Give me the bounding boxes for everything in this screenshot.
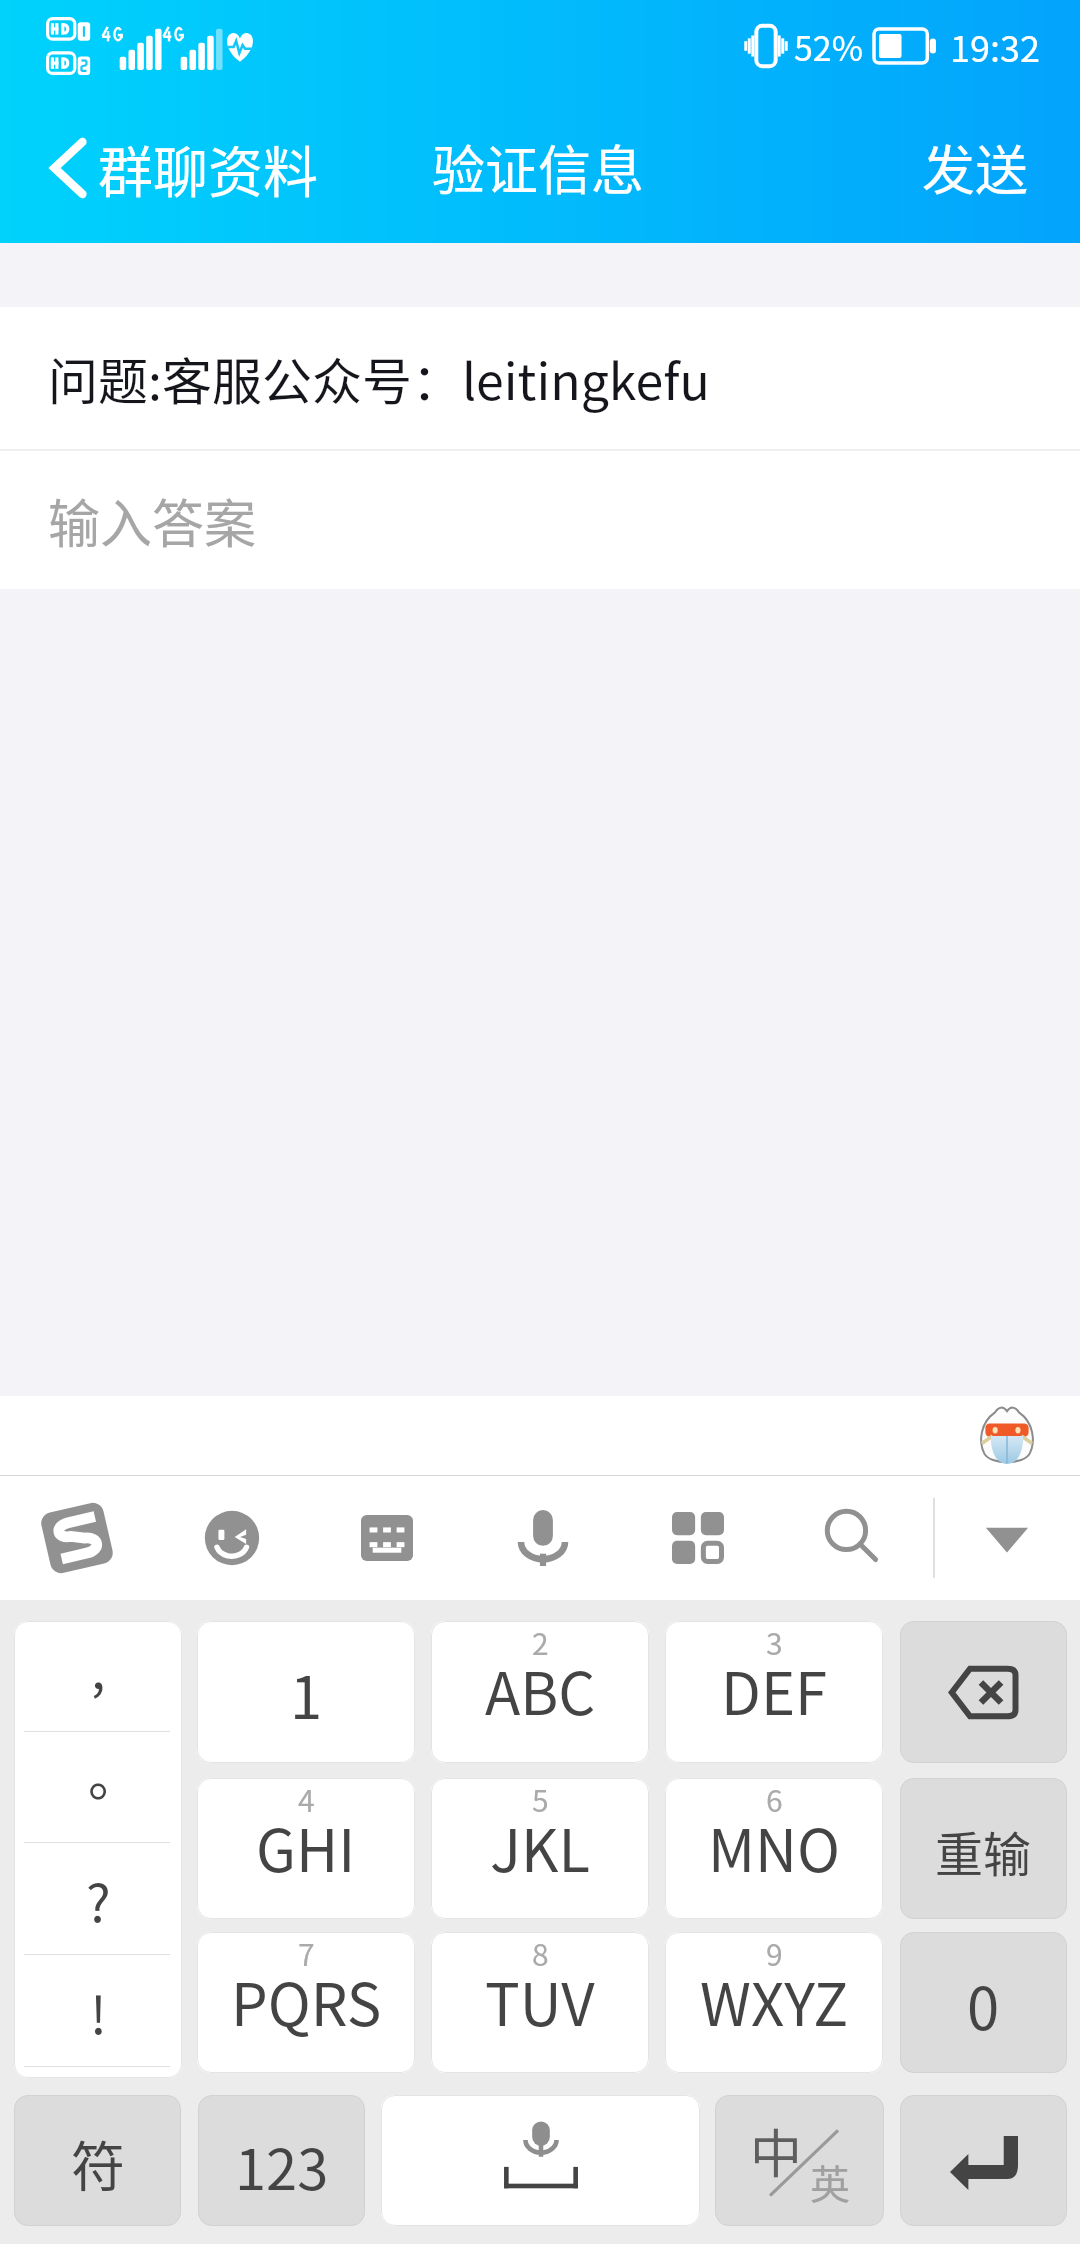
button[interactable]: 重输 xyxy=(900,1778,1067,1919)
button[interactable]: 。 xyxy=(14,1732,182,1843)
button[interactable]: 3 xyxy=(665,1621,883,1763)
staticText: GHI xyxy=(256,1805,356,1889)
staticText: 0 xyxy=(967,1963,1000,2047)
staticText: 输入答案 xyxy=(48,483,257,558)
button[interactable]: Space xyxy=(381,2095,700,2226)
button[interactable]: 4 xyxy=(197,1778,415,1919)
button[interactable]: Chinese English toggle xyxy=(715,2095,884,2226)
button[interactable]: Voice input xyxy=(481,1476,605,1600)
staticText: 9 xyxy=(766,1932,783,1974)
button[interactable]: Emoji xyxy=(170,1476,294,1600)
button[interactable]: 7 xyxy=(197,1932,415,2073)
staticText: 123 xyxy=(235,2125,329,2206)
staticText: JKL xyxy=(490,1805,590,1889)
staticText: 。 xyxy=(88,1736,141,1811)
staticText: 群聊资料 xyxy=(98,128,319,208)
button[interactable]: 1 xyxy=(197,1621,415,1763)
staticText: 8 xyxy=(532,1932,549,1974)
button[interactable]: More apps xyxy=(636,1476,760,1600)
staticText: 3 xyxy=(766,1621,783,1663)
staticText: ! xyxy=(90,1974,107,2049)
button[interactable]: ! xyxy=(14,1955,182,2067)
button[interactable]: 8 xyxy=(431,1932,649,2073)
staticText: 5 xyxy=(532,1778,549,1820)
button[interactable]: Sogou input xyxy=(15,1476,139,1600)
button[interactable]: 发送 xyxy=(892,107,1080,228)
button[interactable]: 123 xyxy=(198,2095,365,2226)
staticText: MNO xyxy=(708,1805,841,1889)
button[interactable]: Enter xyxy=(900,2095,1067,2226)
button[interactable]: Search xyxy=(792,1476,916,1600)
staticText: , xyxy=(91,1629,106,1704)
button[interactable]: 0 xyxy=(900,1932,1067,2073)
staticText: ABC xyxy=(485,1648,596,1732)
button[interactable]: 2 xyxy=(431,1621,649,1763)
staticText: 2 xyxy=(532,1621,549,1663)
button[interactable]: , xyxy=(14,1621,182,1732)
staticText: TUV xyxy=(485,1959,595,2043)
staticText: 7 xyxy=(298,1932,315,1974)
staticText: 验证信息 xyxy=(432,129,644,206)
staticText: 问题:客服公众号：leitingkefu xyxy=(48,342,710,414)
staticText: 52% xyxy=(794,22,864,71)
button[interactable]: 9 xyxy=(665,1932,883,2073)
button[interactable]: 问题:客服公众号：leitingkefu xyxy=(0,307,1080,449)
staticText: WXYZ xyxy=(700,1959,849,2043)
button[interactable]: 群聊资料 xyxy=(0,106,341,230)
staticText: DEF xyxy=(721,1648,828,1732)
staticText: 中 xyxy=(750,2113,803,2188)
staticText: 符 xyxy=(71,2124,125,2202)
staticText: PQRS xyxy=(231,1959,382,2043)
button[interactable]: Keyboard layout xyxy=(325,1476,449,1600)
staticText: 发送 xyxy=(922,129,1028,206)
button[interactable]: 符 xyxy=(14,2095,181,2226)
button[interactable]: Emoji sticker xyxy=(977,1405,1037,1467)
staticText: 1 xyxy=(290,1652,323,1736)
staticText: ? xyxy=(86,1862,111,1937)
staticText: 重输 xyxy=(935,1816,1032,1886)
button[interactable]: Backspace xyxy=(900,1621,1067,1763)
staticText: 6 xyxy=(766,1778,783,1820)
button[interactable]: 6 xyxy=(665,1778,883,1919)
button[interactable]: 输入答案 xyxy=(0,451,1080,589)
staticText: 19:32 xyxy=(950,20,1040,72)
button[interactable]: Hide keyboard xyxy=(945,1476,1069,1600)
button[interactable]: ? xyxy=(14,1843,182,1955)
button[interactable]: 5 xyxy=(431,1778,649,1919)
staticText: 4 xyxy=(298,1778,315,1820)
staticText: 英 xyxy=(810,2153,850,2211)
